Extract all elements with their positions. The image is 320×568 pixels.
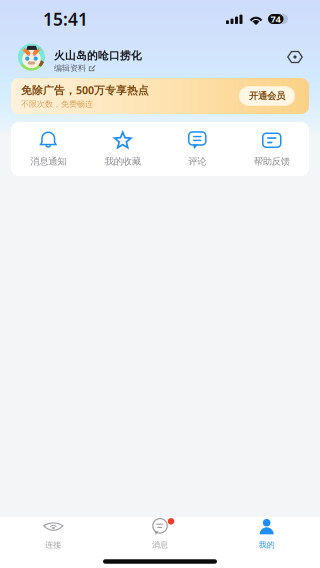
staticText: 评论 bbox=[188, 156, 206, 167]
staticText: 我的 bbox=[259, 540, 275, 550]
staticText: 编辑资料 bbox=[54, 63, 86, 73]
staticText: 消息 bbox=[152, 540, 168, 550]
staticText: 连接 bbox=[45, 540, 61, 550]
button[interactable]: 火山岛的呛口捞化 bbox=[18, 43, 142, 70]
button[interactable]: 消息 bbox=[107, 516, 213, 551]
staticText: 74 bbox=[270, 13, 280, 25]
button[interactable]: 帮助反馈 bbox=[234, 122, 309, 176]
button[interactable]: 我的 bbox=[213, 516, 320, 551]
staticText: 免除广告，500万专享热点 bbox=[21, 83, 149, 97]
staticText: 火山岛的呛口捞化 bbox=[54, 49, 142, 62]
button[interactable]: 我的收藏 bbox=[85, 122, 160, 176]
button[interactable]: 消息通知 bbox=[11, 122, 85, 176]
staticText: 帮助反馈 bbox=[254, 156, 290, 167]
staticText: 15:41 bbox=[43, 7, 88, 30]
staticText: 消息通知 bbox=[30, 156, 66, 167]
staticText: 我的收藏 bbox=[105, 156, 141, 167]
button[interactable]: 评论 bbox=[160, 122, 234, 176]
button[interactable]: 免除广告，500万专享热点 bbox=[11, 78, 309, 114]
staticText: 开通会员 bbox=[249, 90, 285, 102]
button[interactable]: 隐身模式 bbox=[281, 44, 309, 69]
button[interactable]: 连接 bbox=[0, 516, 107, 551]
staticText: 不限次数，免费畅连 bbox=[21, 99, 93, 109]
